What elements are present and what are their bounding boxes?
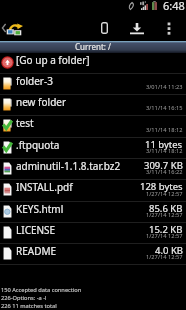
staticText: 3/11/14 16:22	[146, 168, 183, 176]
staticText: 3/11/14 18:12	[146, 126, 183, 134]
staticText: 15.2 KB	[149, 223, 183, 236]
staticText: INSTALL.pdf	[16, 180, 73, 194]
staticText: 1/27/14 12:57	[146, 253, 183, 261]
staticText: 85.6 KB	[149, 202, 183, 215]
button[interactable]: Local device	[92, 15, 117, 41]
button[interactable]: Navigate up	[0, 15, 28, 41]
staticText: KEYS.html	[16, 202, 64, 216]
button[interactable]: test	[0, 116, 186, 138]
staticText: README	[16, 244, 57, 258]
button[interactable]: README	[0, 244, 186, 265]
button[interactable]: new folder	[0, 95, 186, 116]
button[interactable]: Download	[123, 15, 150, 41]
staticText: 6:48	[163, 0, 185, 13]
staticText: .ftpquota	[16, 138, 60, 152]
staticText: Current: /	[75, 41, 111, 52]
button[interactable]: folder-3	[0, 74, 186, 95]
button[interactable]: LICENSE	[0, 223, 186, 244]
button[interactable]: KEYS.html	[0, 202, 186, 223]
staticText: 3/11/14 16:15	[146, 104, 183, 112]
staticText: 128 bytes	[140, 180, 183, 193]
staticText: 11 bytes	[145, 138, 183, 151]
staticText: [Go up a folder]	[16, 53, 90, 67]
button[interactable]: INSTALL.pdf	[0, 180, 186, 202]
staticText: 226-Options: -a -l	[1, 294, 47, 302]
staticText: LICENSE	[16, 223, 56, 237]
staticText: adminutil-1.1.8.tar.bz2	[16, 159, 121, 173]
button[interactable]: [Go up a folder]	[0, 53, 186, 74]
button[interactable]: .ftpquota	[0, 138, 186, 159]
staticText: 1/27/14 12:57	[146, 190, 183, 198]
staticText: new folder	[16, 95, 67, 109]
button[interactable]: More options	[152, 15, 186, 41]
staticText: 226 11 matches total	[1, 302, 57, 310]
staticText: folder-3	[16, 74, 53, 88]
button[interactable]: adminutil-1.1.8.tar.bz2	[0, 159, 186, 180]
staticText: 1/27/14 12:57	[146, 232, 183, 240]
staticText: 3/11/14 18:12	[146, 147, 183, 155]
staticText: 150 Accepted data connection	[1, 286, 82, 294]
staticText: test	[16, 116, 34, 130]
staticText: 309.7 KB	[144, 159, 183, 172]
staticText: 3/01/14 11:23	[146, 83, 183, 91]
staticText: 1/27/14 12:57	[146, 211, 183, 219]
staticText: 4.0 KB	[155, 244, 183, 257]
